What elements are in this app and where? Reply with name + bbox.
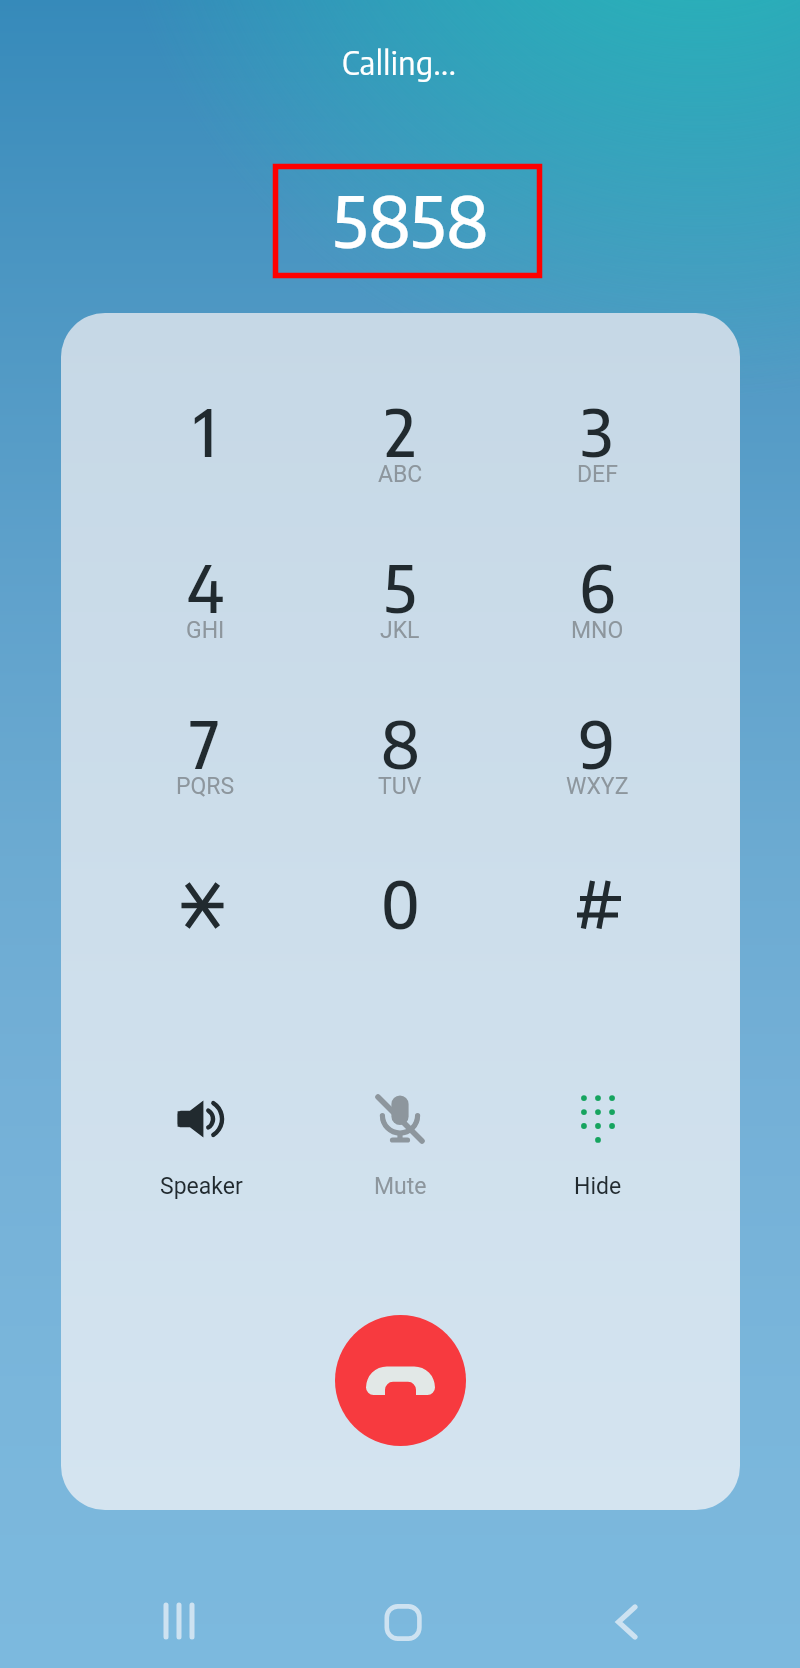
staticText: GHI [186,617,225,644]
staticText: DEF [577,461,618,488]
button[interactable]: 2 [315,364,485,496]
staticText: Hide [574,1173,622,1200]
staticText: 0 [381,862,420,943]
button[interactable]: 4 [120,520,290,652]
staticText: WXYZ [566,773,629,800]
button[interactable]: 6 [512,520,682,652]
button[interactable]: 7 [120,676,290,808]
button[interactable]: End call [335,1315,466,1446]
staticText: PQRS [176,773,235,800]
staticText: 8 [381,702,420,783]
button[interactable]: 0 [315,836,485,968]
button[interactable]: Back [595,1590,665,1650]
staticText: MNO [571,617,624,644]
staticText: 5858 [333,176,489,263]
button[interactable]: 1 [120,364,290,496]
staticText: Calling... [342,42,457,83]
button[interactable]: Speaker [106,1047,296,1187]
staticText: 3 [581,390,613,471]
staticText: Mute [374,1173,427,1200]
button[interactable]: Hide [503,1047,693,1187]
staticText: Speaker [160,1173,243,1200]
staticText: 7 [190,702,220,783]
button[interactable]: 5 [315,520,485,652]
button[interactable]: 9 [512,676,682,808]
staticText: 5 [384,546,416,627]
staticText: 6 [579,546,616,627]
staticText: 4 [187,546,224,627]
staticText: 9 [579,702,616,783]
staticText: 1 [194,390,217,471]
button[interactable]: 8 [315,676,485,808]
button[interactable]: Recent apps [140,1590,220,1650]
button[interactable]: Mute [305,1047,495,1187]
button[interactable]: Home [370,1590,440,1650]
staticText: ABC [378,461,423,488]
button[interactable]: Star [120,836,290,968]
button[interactable]: Hash [512,836,682,968]
button[interactable]: 3 [512,364,682,496]
staticText: JKL [380,617,420,644]
staticText: 2 [385,390,416,471]
staticText: TUV [378,773,422,800]
